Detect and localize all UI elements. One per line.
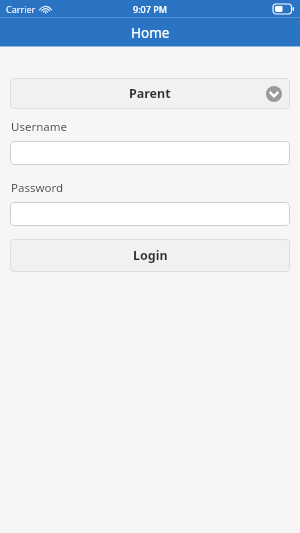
staticText: Username bbox=[11, 119, 67, 135]
staticText: Login bbox=[133, 247, 168, 264]
staticText: 9:07 PM bbox=[133, 3, 167, 15]
staticText: Parent bbox=[129, 85, 171, 102]
staticText: Carrier bbox=[6, 3, 36, 15]
button[interactable]: Text field bbox=[10, 202, 290, 226]
button[interactable]: Login bbox=[10, 239, 290, 272]
staticText: Password bbox=[11, 180, 64, 196]
staticText: Home bbox=[131, 24, 170, 42]
button[interactable]: Parent bbox=[10, 78, 290, 109]
button[interactable]: Text field bbox=[10, 141, 290, 165]
